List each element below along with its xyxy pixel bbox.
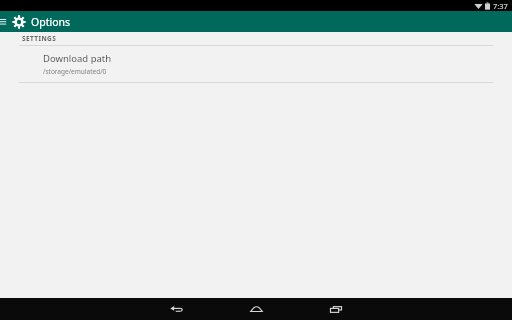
- button[interactable]: Navigation drawer: [1, 11, 10, 32]
- button[interactable]: Download path: [0, 46, 512, 82]
- staticText: Options: [31, 15, 71, 29]
- button[interactable]: Options: [10, 11, 27, 32]
- staticText: Download path: [43, 52, 112, 65]
- staticText: 7:37: [493, 1, 508, 11]
- staticText: /storage/emulated/0: [43, 67, 107, 76]
- staticText: SETTINGS: [22, 34, 57, 43]
- button[interactable]: Home: [231, 298, 281, 320]
- button[interactable]: Recent apps: [311, 298, 361, 320]
- button[interactable]: Back: [151, 298, 201, 320]
